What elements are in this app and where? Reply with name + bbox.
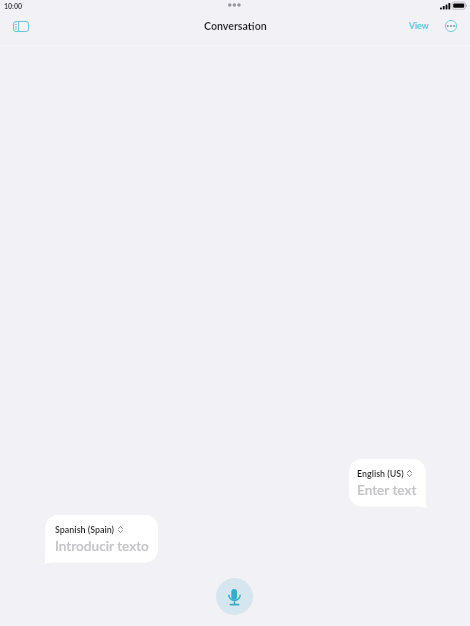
staticText: 10:00 [4, 2, 23, 10]
staticText: English (US) [357, 468, 404, 479]
staticText: Introducir texto [55, 538, 149, 554]
staticText: View [409, 20, 429, 31]
button[interactable]: Spanish (Spain) [42, 515, 158, 565]
staticText: Enter text [357, 482, 417, 498]
button[interactable]: Toggle sidebar [7, 14, 34, 38]
staticText: Spanish (Spain) [55, 524, 115, 535]
button[interactable]: View [404, 14, 434, 36]
staticText: Conversation [204, 20, 267, 33]
button[interactable]: English (US) [349, 459, 429, 509]
button[interactable]: More options [438, 13, 463, 38]
button[interactable]: Record audio [216, 578, 253, 615]
